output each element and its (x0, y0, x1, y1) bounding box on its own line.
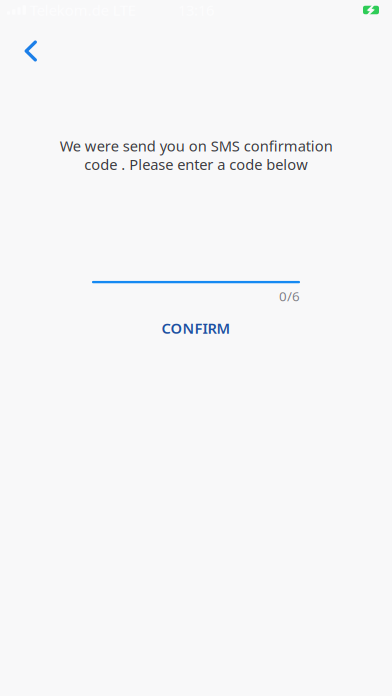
button[interactable]: CONFIRM (116, 317, 276, 339)
button[interactable]: Back (8, 20, 52, 82)
staticText: CONFIRM (161, 318, 230, 338)
staticText: 0/6 (279, 287, 300, 305)
staticText: We were send you on SMS confirmation cod… (59, 136, 332, 174)
